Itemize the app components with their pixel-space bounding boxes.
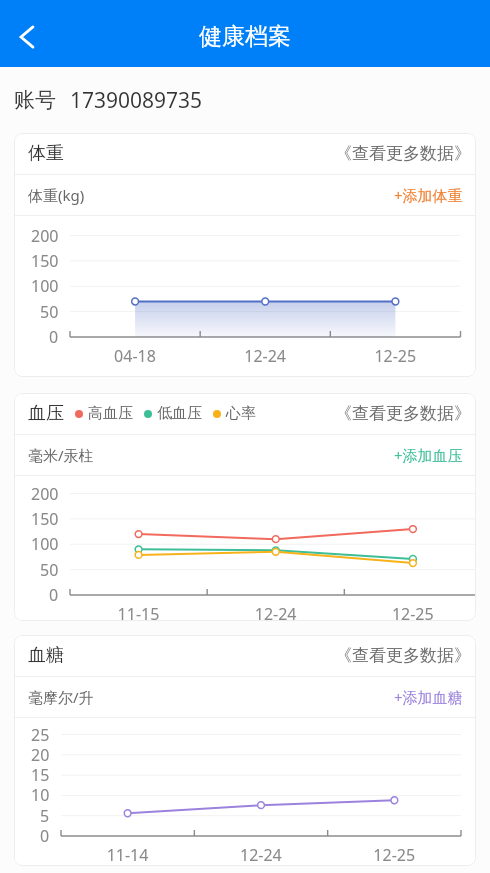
button[interactable]: 《查看更多数据》 xyxy=(335,143,471,164)
button[interactable]: +添加血糖 xyxy=(394,687,463,707)
staticText: 《查看更多数据》 xyxy=(335,143,471,164)
staticText: 低血压 xyxy=(157,404,202,423)
staticText: 毫米/汞柱 xyxy=(28,445,94,465)
staticText: 《查看更多数据》 xyxy=(335,645,471,666)
button[interactable]: Back xyxy=(1,11,53,63)
button[interactable]: +添加血压 xyxy=(394,445,463,465)
staticText: 血压 xyxy=(28,402,64,425)
staticText: +添加血压 xyxy=(394,445,463,465)
staticText: +添加体重 xyxy=(394,185,463,205)
staticText: 血糖 xyxy=(28,644,64,667)
staticText: 17390089735 xyxy=(70,86,203,115)
button[interactable]: 《查看更多数据》 xyxy=(335,645,471,666)
button[interactable]: +添加体重 xyxy=(394,185,463,205)
staticText: 心率 xyxy=(226,404,256,423)
button[interactable]: 《查看更多数据》 xyxy=(335,403,471,424)
staticText: 高血压 xyxy=(88,404,133,423)
staticText: 体重(kg) xyxy=(28,185,85,205)
staticText: 体重 xyxy=(28,142,64,165)
staticText: 账号 xyxy=(14,87,56,113)
staticText: 毫摩尔/升 xyxy=(28,687,94,707)
staticText: 健康档案 xyxy=(199,22,291,51)
staticText: 《查看更多数据》 xyxy=(335,403,471,424)
staticText: +添加血糖 xyxy=(394,687,463,707)
